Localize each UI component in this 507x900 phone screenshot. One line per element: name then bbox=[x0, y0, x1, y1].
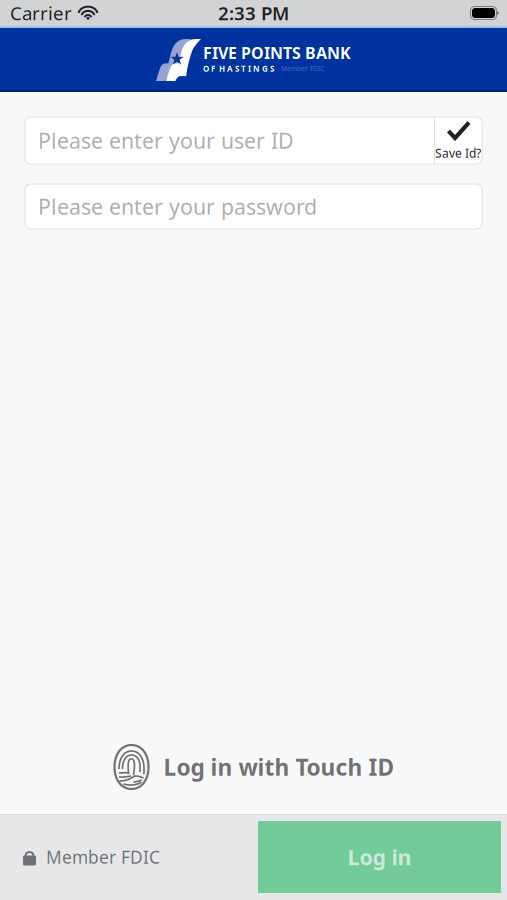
button[interactable]: Log in with Touch ID bbox=[112, 743, 394, 791]
staticText: Member FDIC bbox=[46, 845, 160, 868]
staticText: Log in with Touch ID bbox=[163, 752, 394, 782]
staticText: Log in bbox=[347, 843, 411, 871]
staticText: Save Id? bbox=[435, 145, 481, 161]
staticText: Member FDIC bbox=[281, 64, 324, 73]
staticText: FIVE POINTS BANK bbox=[203, 42, 351, 63]
staticText: Please enter your password bbox=[38, 192, 317, 221]
staticText: O F H A S T I N G S bbox=[203, 63, 274, 74]
staticText: Please enter your user ID bbox=[38, 126, 294, 155]
staticText: Carrier bbox=[10, 1, 72, 25]
button[interactable]: Please enter your password bbox=[25, 184, 482, 229]
button[interactable]: Please enter your user ID bbox=[25, 117, 434, 164]
staticText: 2:33 PM bbox=[218, 1, 289, 25]
button[interactable]: Log in bbox=[258, 821, 501, 893]
button[interactable]: Save Id bbox=[434, 117, 482, 164]
